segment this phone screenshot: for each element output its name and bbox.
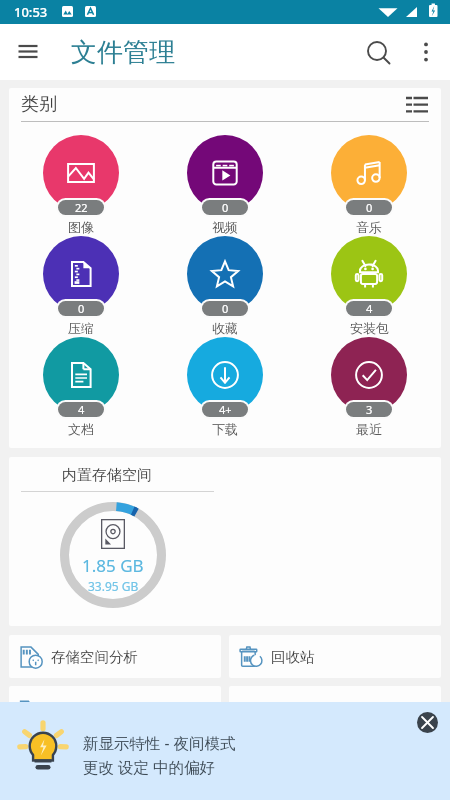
staticText: 4+ (219, 402, 232, 417)
button[interactable]: 4 (297, 223, 441, 324)
staticText: 文件管理 (71, 36, 175, 69)
button[interactable]: 0 (297, 122, 441, 223)
staticText: 22 (75, 200, 88, 215)
staticText: 压缩 (68, 320, 94, 336)
staticText: 文档 (68, 421, 94, 437)
staticText: 0 (222, 301, 229, 316)
button[interactable]: 4 (9, 324, 153, 425)
staticText: 3 (366, 402, 373, 417)
button[interactable]: 4+ (153, 324, 297, 425)
button[interactable] (9, 686, 221, 729)
staticText: 视频 (212, 219, 238, 235)
staticText: 4 (366, 301, 373, 316)
staticText: 存储空间分析 (51, 648, 138, 666)
button[interactable]: Close (417, 712, 438, 733)
staticText: 10:53 (14, 3, 48, 21)
staticText: 最近 (356, 421, 382, 437)
button[interactable]: 3 (297, 324, 441, 425)
staticText: 类别 (21, 93, 57, 116)
button[interactable]: 22 (9, 122, 153, 223)
staticText: 1.85 GB (82, 554, 144, 577)
staticText: 0 (78, 301, 85, 316)
staticText: 更改 设定 中的偏好 (83, 756, 216, 777)
button[interactable]: Search (356, 30, 400, 74)
button[interactable]: List view (402, 90, 432, 120)
button[interactable]: Menu (8, 32, 48, 72)
staticText: 4 (78, 402, 85, 417)
button[interactable]: 存储空间分析 (9, 635, 221, 678)
button[interactable] (229, 686, 441, 729)
staticText: 收藏 (212, 320, 238, 336)
staticText: 新显示特性 - 夜间模式 (83, 732, 236, 753)
staticText: 回收站 (271, 648, 315, 666)
staticText: 0 (222, 200, 229, 215)
staticText: 安装包 (350, 320, 389, 336)
staticText: 内置存储空间 (62, 466, 152, 485)
staticText: 图像 (68, 219, 94, 235)
staticText: 0 (366, 200, 373, 215)
button[interactable]: 0 (153, 122, 297, 223)
staticText: 33.95 GB (88, 578, 139, 594)
button[interactable]: More options (406, 32, 446, 72)
button[interactable]: Internal storage (60, 502, 166, 608)
button[interactable]: 0 (9, 223, 153, 324)
button[interactable]: 0 (153, 223, 297, 324)
button[interactable]: 回收站 (229, 635, 441, 678)
staticText: 音乐 (356, 219, 382, 235)
staticText: 下载 (212, 421, 238, 437)
